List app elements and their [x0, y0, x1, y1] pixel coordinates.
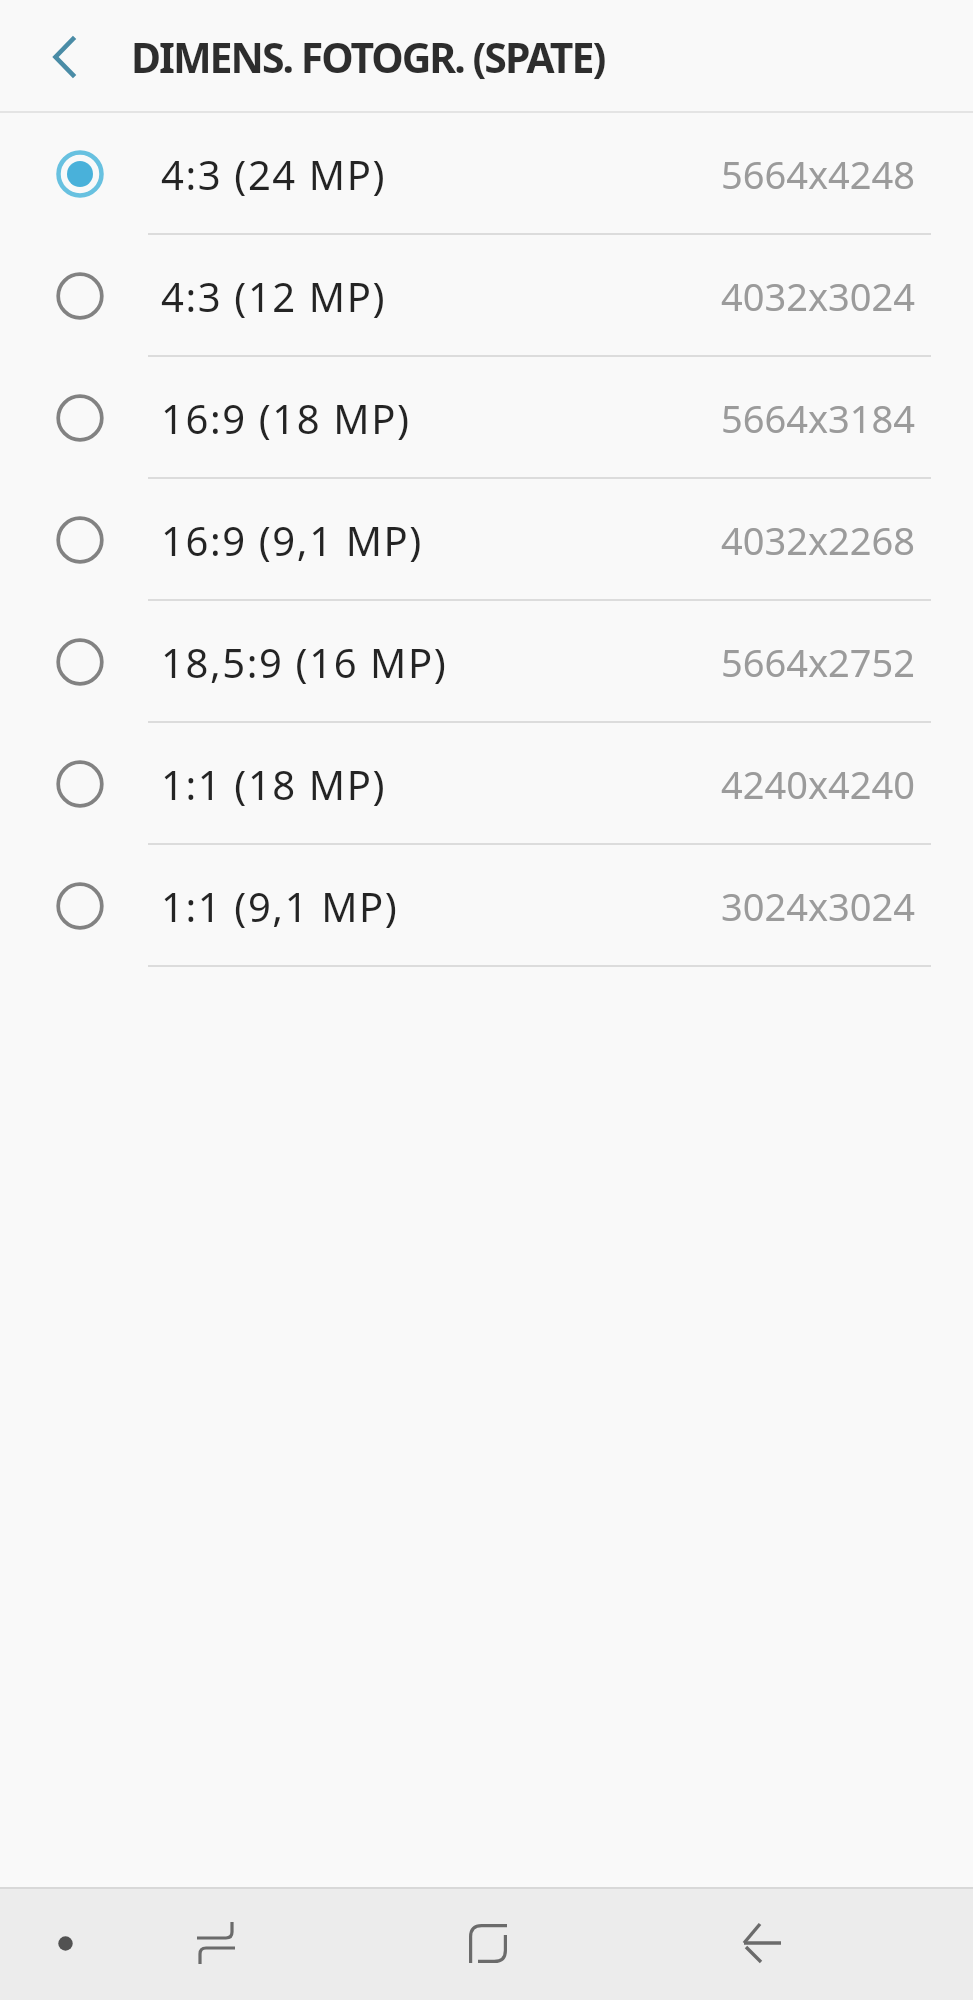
- button[interactable]: [37, 1915, 93, 1971]
- button[interactable]: 4:3 (12 MP): [0, 235, 973, 357]
- staticText: 18,5:9 (16 MP): [161, 635, 448, 689]
- button[interactable]: 1:1 (9,1 MP): [0, 845, 973, 967]
- staticText: 3024x3024: [721, 880, 915, 932]
- button[interactable]: [728, 1909, 796, 1977]
- button[interactable]: 1:1 (18 MP): [0, 723, 973, 845]
- button[interactable]: 18,5:9 (16 MP): [0, 601, 973, 723]
- staticText: 4240x4240: [721, 758, 915, 810]
- staticText: 4032x3024: [721, 270, 915, 322]
- button[interactable]: [182, 1909, 250, 1977]
- staticText: 4:3 (24 MP): [161, 147, 387, 201]
- staticText: 5664x4248: [721, 148, 915, 200]
- button[interactable]: [0, 0, 130, 113]
- staticText: 4032x2268: [721, 514, 915, 566]
- staticText: 5664x3184: [721, 392, 915, 444]
- staticText: 16:9 (9,1 MP): [161, 513, 423, 567]
- staticText: 16:9 (18 MP): [161, 391, 411, 445]
- staticText: 4:3 (12 MP): [161, 269, 387, 323]
- button[interactable]: [454, 1909, 522, 1977]
- button[interactable]: 16:9 (18 MP): [0, 357, 973, 479]
- button[interactable]: 16:9 (9,1 MP): [0, 479, 973, 601]
- staticText: 1:1 (18 MP): [161, 757, 387, 811]
- staticText: 1:1 (9,1 MP): [161, 879, 399, 933]
- button[interactable]: 4:3 (24 MP): [0, 113, 973, 235]
- staticText: DIMENS. FOTOGR. (SPATE): [131, 29, 605, 85]
- staticText: 5664x2752: [721, 636, 915, 688]
